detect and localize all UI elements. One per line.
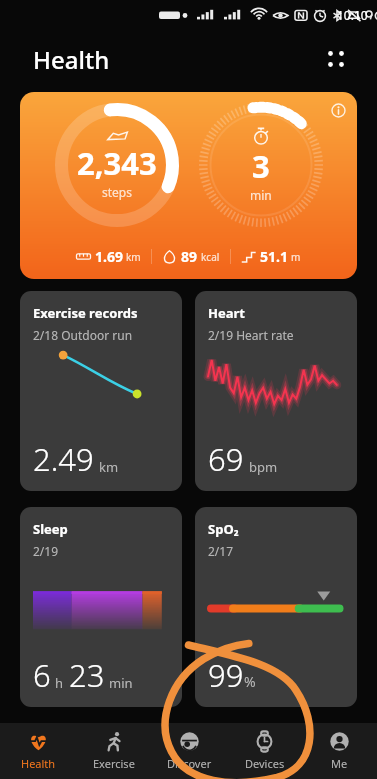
staticText: SpO₂ [208, 520, 239, 538]
staticText: 51.1 [260, 247, 288, 266]
staticText: h [55, 674, 64, 692]
button[interactable]: Info [325, 97, 351, 123]
staticText: steps [102, 184, 132, 200]
staticText: % [244, 672, 256, 691]
staticText: Me [331, 756, 348, 771]
staticText: min [109, 674, 133, 692]
staticText: km [99, 458, 119, 476]
button[interactable]: More options [313, 36, 359, 82]
staticText: 23 [69, 654, 105, 696]
staticText: 2/19 [33, 543, 59, 559]
button[interactable]: Exercise records [20, 291, 182, 491]
button[interactable]: Info [20, 92, 357, 279]
button[interactable]: Devices [227, 723, 302, 779]
button[interactable]: Discover [152, 723, 227, 779]
staticText: 89 [181, 247, 198, 266]
staticText: m [291, 250, 301, 264]
staticText: 1.69 [95, 247, 123, 266]
button[interactable]: Me [302, 723, 377, 779]
staticText: 2/18 Outdoor run [33, 327, 133, 343]
staticText: 99 [208, 654, 244, 696]
staticText: 10:10 [337, 7, 368, 23]
staticText: kcal [201, 250, 220, 264]
staticText: Exercise records [33, 304, 138, 322]
staticText: 69 [208, 438, 244, 480]
staticText: Health [33, 43, 110, 76]
staticText: min [250, 187, 272, 203]
staticText: Sleep [33, 520, 68, 538]
button[interactable]: Heart [195, 291, 357, 491]
staticText: Exercise [93, 756, 135, 771]
staticText: Heart [208, 304, 245, 322]
staticText: Devices [245, 756, 285, 771]
button[interactable]: Health [0, 723, 76, 779]
staticText: km [126, 250, 141, 264]
button[interactable]: SpO₂ [195, 507, 357, 707]
button[interactable]: Sleep [20, 507, 182, 707]
staticText: 2.49 [33, 438, 94, 480]
staticText: Health [21, 756, 56, 771]
staticText: 2/19 Heart rate [208, 327, 294, 343]
staticText: Discover [167, 756, 212, 771]
staticText: 6 [33, 654, 51, 696]
staticText: 3 [252, 145, 270, 187]
button[interactable]: Exercise [76, 723, 152, 779]
staticText: 2,343 [77, 142, 157, 184]
staticText: bpm [249, 458, 278, 476]
staticText: 2/17 [208, 543, 234, 559]
